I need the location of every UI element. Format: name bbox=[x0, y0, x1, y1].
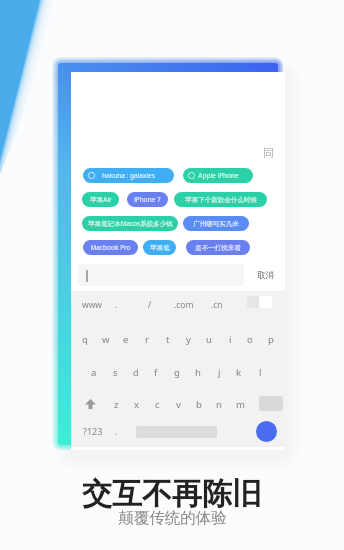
staticText: . bbox=[115, 299, 118, 311]
button[interactable]: Search bbox=[256, 421, 277, 442]
button[interactable]: 苹果下个新款会什么时候 bbox=[174, 192, 267, 207]
staticText: e bbox=[123, 333, 129, 346]
button[interactable]: . bbox=[100, 296, 132, 314]
button[interactable]: n bbox=[210, 393, 228, 415]
button[interactable]: .cn bbox=[201, 296, 233, 314]
staticText: Macbook Pro bbox=[90, 243, 131, 252]
staticText: z bbox=[114, 398, 119, 411]
staticText: . bbox=[115, 425, 118, 437]
button[interactable]: Refresh bbox=[259, 144, 277, 162]
button[interactable]: 苹果Air bbox=[82, 192, 119, 207]
button[interactable]: b bbox=[190, 393, 208, 415]
staticText: 广州哪可买几米 bbox=[193, 220, 239, 228]
staticText: q bbox=[82, 333, 88, 346]
staticText: y bbox=[186, 333, 191, 346]
button[interactable]: j bbox=[210, 361, 228, 383]
button[interactable]: www bbox=[76, 296, 108, 314]
button[interactable]: e bbox=[117, 328, 135, 350]
staticText: l bbox=[259, 366, 262, 379]
staticText: b bbox=[196, 398, 202, 411]
button[interactable]: o bbox=[241, 328, 259, 350]
button[interactable]: d bbox=[127, 361, 145, 383]
staticText: t bbox=[166, 333, 170, 346]
button[interactable]: Macbook Pro bbox=[83, 240, 138, 255]
button[interactable]: Apple iPhone bbox=[183, 168, 253, 183]
button[interactable]: u bbox=[200, 328, 218, 350]
button[interactable]: .com bbox=[168, 296, 200, 314]
staticText: u bbox=[206, 333, 212, 346]
button[interactable]: ?123 bbox=[79, 423, 107, 439]
staticText: 是不一打扰来看 bbox=[195, 244, 241, 252]
staticText: www bbox=[82, 299, 103, 311]
staticText: i bbox=[229, 333, 232, 346]
button[interactable]: y bbox=[179, 328, 197, 350]
button[interactable]: Shift bbox=[79, 394, 101, 414]
staticText: s bbox=[113, 366, 118, 379]
staticText: n bbox=[216, 398, 222, 411]
button[interactable]: 广州哪可买几米 bbox=[183, 216, 249, 231]
button[interactable]: t bbox=[159, 328, 177, 350]
staticText: v bbox=[176, 398, 181, 411]
staticText: o bbox=[247, 333, 253, 346]
button[interactable]: r bbox=[138, 328, 156, 350]
button[interactable]: i bbox=[221, 328, 239, 350]
button[interactable]: g bbox=[168, 361, 186, 383]
button[interactable]: s bbox=[106, 361, 124, 383]
staticText: h bbox=[195, 366, 201, 379]
button[interactable]: z bbox=[107, 393, 125, 415]
button[interactable]: v bbox=[169, 393, 187, 415]
staticText: a bbox=[91, 366, 97, 379]
button[interactable]: 是不一打扰来看 bbox=[186, 240, 250, 255]
button[interactable]: w bbox=[97, 328, 115, 350]
staticText: hakuna : galaxies bbox=[102, 171, 155, 180]
staticText: k bbox=[236, 366, 242, 379]
button[interactable]: l bbox=[251, 361, 269, 383]
button[interactable]: Keyboard layout bbox=[247, 296, 272, 308]
staticText: c bbox=[155, 398, 160, 411]
staticText: x bbox=[134, 398, 140, 411]
button[interactable]: q bbox=[76, 328, 94, 350]
button[interactable]: 取消 bbox=[253, 269, 277, 282]
staticText: 苹果下个新款会什么时候 bbox=[185, 196, 257, 204]
button[interactable]: hakuna : galaxies bbox=[83, 168, 174, 183]
staticText: f bbox=[154, 366, 158, 379]
button[interactable]: h bbox=[189, 361, 207, 383]
staticText: 同 bbox=[263, 146, 274, 160]
button[interactable]: . bbox=[109, 423, 124, 439]
button[interactable]: c bbox=[148, 393, 166, 415]
staticText: / bbox=[148, 299, 152, 311]
staticText: 取消 bbox=[257, 270, 274, 281]
button[interactable]: 苹果笔 bbox=[143, 240, 176, 255]
staticText: 颠覆传统的体验 bbox=[118, 508, 227, 528]
staticText: iPhone 7 bbox=[134, 195, 161, 204]
button[interactable]: x bbox=[128, 393, 146, 415]
staticText: d bbox=[133, 366, 139, 379]
staticText: .com bbox=[174, 299, 194, 311]
staticText: 苹果笔 bbox=[150, 244, 170, 252]
button[interactable]: iPhone 7 bbox=[127, 192, 168, 207]
button[interactable]: f bbox=[147, 361, 165, 383]
staticText: g bbox=[174, 366, 180, 379]
staticText: .cn bbox=[211, 299, 223, 311]
staticText: w bbox=[102, 333, 110, 346]
button[interactable]: k bbox=[230, 361, 248, 383]
button[interactable]: 苹果笔记本Macos系统多少钱 bbox=[82, 216, 178, 231]
button[interactable]: a bbox=[85, 361, 103, 383]
staticText: 交互不再陈旧 bbox=[82, 475, 262, 513]
staticText: Apple iPhone bbox=[198, 171, 239, 180]
button[interactable]: p bbox=[262, 328, 280, 350]
button[interactable]: / bbox=[134, 296, 166, 314]
staticText: 苹果笔记本Macos系统多少钱 bbox=[88, 219, 173, 228]
staticText: 苹果Air bbox=[90, 195, 112, 204]
button[interactable]: m bbox=[231, 393, 249, 415]
staticText: p bbox=[268, 333, 274, 346]
staticText: r bbox=[145, 333, 149, 346]
staticText: ?123 bbox=[83, 425, 103, 437]
button[interactable] bbox=[78, 264, 244, 286]
staticText: m bbox=[236, 398, 245, 411]
staticText: j bbox=[218, 366, 221, 379]
